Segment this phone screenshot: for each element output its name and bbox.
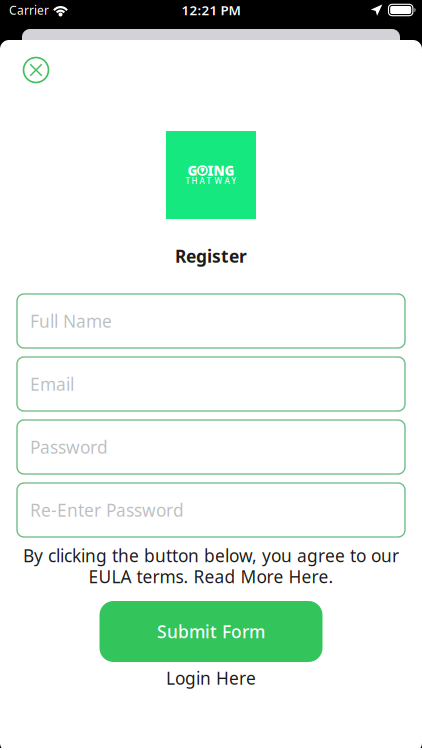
button[interactable]: Login Here xyxy=(166,668,256,688)
button[interactable]: Submit Form xyxy=(99,601,322,662)
staticText: Login Here xyxy=(166,666,256,689)
button[interactable]: Password xyxy=(17,420,405,474)
button[interactable]: Re-Enter Password xyxy=(17,483,405,537)
button[interactable]: Full Name xyxy=(17,294,405,348)
staticText: EULA terms. Read More Here. xyxy=(88,565,333,588)
staticText: Email xyxy=(30,372,74,395)
staticText: ING xyxy=(207,162,234,179)
staticText: By clicking the button below, you agree … xyxy=(23,544,399,567)
button[interactable]: Email xyxy=(17,357,405,411)
staticText: Submit Form xyxy=(157,620,265,643)
staticText: Register xyxy=(175,244,247,267)
staticText: Full Name xyxy=(30,309,112,332)
staticText: Carrier xyxy=(9,2,49,18)
button[interactable]: Close xyxy=(14,48,58,92)
staticText: G xyxy=(187,162,197,179)
staticText: Password xyxy=(30,435,108,458)
staticText: 12:21 PM xyxy=(181,1,240,19)
staticText: Re-Enter Password xyxy=(30,498,184,521)
staticText: T H A T W A Y xyxy=(185,176,236,186)
